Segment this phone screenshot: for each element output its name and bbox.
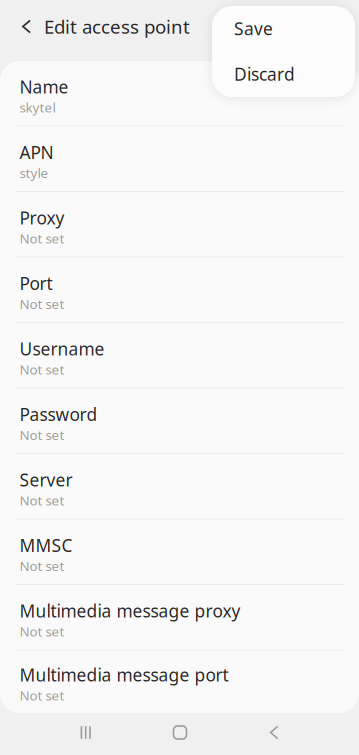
staticText: Discard [234, 62, 295, 85]
staticText: Not set [19, 229, 64, 247]
button[interactable]: Back [0, 0, 44, 53]
staticText: APN [19, 141, 53, 164]
button[interactable]: Name [0, 61, 359, 126]
staticText: MMSC [19, 534, 72, 557]
staticText: Username [19, 337, 104, 360]
button[interactable]: Save [212, 6, 355, 51]
staticText: Server [19, 468, 72, 491]
staticText: Password [19, 403, 97, 426]
button[interactable]: Home [133, 711, 227, 753]
staticText: Edit access point [44, 14, 190, 39]
staticText: Name [19, 75, 68, 98]
button[interactable]: Discard [212, 51, 355, 97]
staticText: skytel [19, 98, 55, 116]
button[interactable]: Multimedia message port [0, 650, 359, 713]
staticText: Not set [19, 491, 64, 509]
staticText: Port [19, 272, 52, 295]
button[interactable]: Username [0, 323, 359, 388]
staticText: Not set [19, 686, 64, 704]
staticText: Not set [19, 426, 64, 444]
button[interactable]: Proxy [0, 192, 359, 257]
staticText: Proxy [19, 206, 64, 229]
button[interactable]: APN [0, 126, 359, 192]
button[interactable]: Back [227, 711, 321, 753]
button[interactable]: Recent apps [38, 711, 133, 753]
button[interactable]: MMSC [0, 519, 359, 585]
staticText: Save [234, 17, 273, 40]
staticText: Multimedia message port [19, 663, 228, 686]
staticText: Not set [19, 557, 64, 575]
staticText: Multimedia message proxy [19, 599, 240, 622]
staticText: Not set [19, 295, 64, 313]
button[interactable]: Multimedia message proxy [0, 585, 359, 650]
staticText: Not set [19, 622, 64, 640]
button[interactable]: Server [0, 454, 359, 519]
button[interactable]: Password [0, 388, 359, 454]
button[interactable]: Port [0, 257, 359, 323]
staticText: style [19, 164, 48, 182]
staticText: Not set [19, 360, 64, 378]
